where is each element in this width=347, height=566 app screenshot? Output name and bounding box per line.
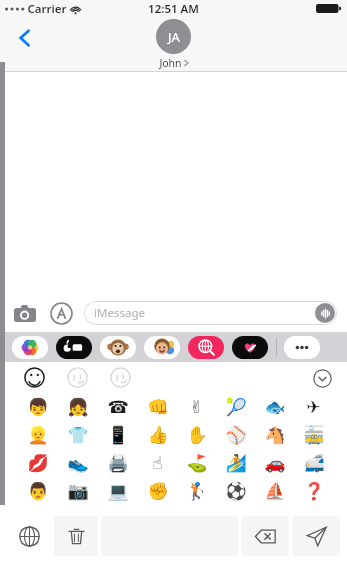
button[interactable]: ✌️	[177, 393, 216, 421]
button[interactable]: Switch keyboard	[7, 516, 51, 556]
button[interactable]: JA	[156, 19, 191, 70]
button[interactable]: 🎾	[216, 393, 255, 421]
button[interactable]: App	[188, 336, 224, 359]
button[interactable]: Back	[8, 21, 42, 55]
staticText: 📷	[67, 481, 89, 501]
button[interactable]: ☎️	[98, 393, 138, 421]
button[interactable]: ⛵	[255, 477, 294, 505]
staticText: ✋	[186, 425, 208, 445]
staticText: ☎️	[107, 397, 129, 417]
staticText: ✊	[147, 481, 169, 501]
button[interactable]: 🐴	[255, 421, 294, 449]
button[interactable]: App	[56, 336, 92, 359]
staticText: 📱	[107, 425, 129, 445]
staticText: 🏄	[225, 453, 247, 473]
button[interactable]: Delete sticker	[54, 516, 98, 556]
button[interactable]: 🏄	[216, 449, 255, 477]
button[interactable]: App	[232, 336, 268, 359]
staticText: ✌️	[189, 397, 204, 417]
button[interactable]: Send	[292, 516, 340, 556]
button[interactable]: 🚅	[294, 449, 333, 477]
button[interactable]: 👟	[58, 449, 98, 477]
staticText: ❓	[303, 481, 325, 501]
button[interactable]: App	[144, 336, 180, 359]
staticText: 12:51 AM	[148, 1, 199, 17]
staticText: 👟	[67, 453, 89, 473]
button[interactable]: 👨	[18, 477, 58, 505]
button[interactable]: 💋	[18, 449, 58, 477]
button[interactable]: 👧	[58, 393, 98, 421]
staticText: 👕	[67, 425, 89, 445]
staticText: 💻	[107, 481, 129, 501]
staticText: 🚋	[303, 425, 325, 445]
button[interactable]: 🖨	[98, 449, 138, 477]
staticText: 👊	[147, 397, 169, 417]
staticText: 👍	[147, 425, 169, 445]
button[interactable]: iMessage	[84, 301, 337, 325]
button[interactable]: Emoji category	[24, 367, 45, 388]
button[interactable]: 👱	[18, 421, 58, 449]
staticText: 🎾	[225, 397, 247, 417]
button[interactable]: 📱	[98, 421, 138, 449]
button[interactable]: ⛳	[177, 449, 216, 477]
button[interactable]: 💻	[98, 477, 138, 505]
staticText: 👱	[27, 425, 49, 445]
button[interactable]: Apps	[46, 298, 76, 328]
staticText: Carrier	[27, 1, 67, 17]
button[interactable]: ⚾	[216, 421, 255, 449]
button[interactable]: 🐟	[255, 393, 294, 421]
button[interactable]: App	[100, 336, 136, 359]
button[interactable]: Collapse keyboard	[311, 367, 333, 389]
staticText: 💋	[27, 453, 49, 473]
button[interactable]: Backspace	[241, 516, 289, 556]
staticText: JA	[168, 28, 180, 46]
staticText: 👨	[27, 481, 49, 501]
button[interactable]: 🚋	[294, 421, 333, 449]
button[interactable]: Emoji category	[67, 367, 88, 388]
button[interactable]: ✋	[177, 421, 216, 449]
button[interactable]: 👍	[138, 421, 177, 449]
button[interactable]: 👦	[18, 393, 58, 421]
staticText: 🖨	[107, 453, 129, 473]
button[interactable]: ⚽	[216, 477, 255, 505]
button[interactable]: ☝️	[138, 449, 177, 477]
staticText: 👧	[67, 397, 89, 417]
staticText: 🏌	[186, 481, 208, 501]
staticText: 🐟	[264, 397, 286, 417]
button[interactable]: 👕	[58, 421, 98, 449]
staticText: ⛵	[264, 481, 286, 501]
staticText: John	[159, 56, 182, 70]
button[interactable]: Camera	[10, 298, 40, 328]
button[interactable]: 📷	[58, 477, 98, 505]
button[interactable]: 🏌	[177, 477, 216, 505]
staticText: 🚅	[303, 453, 325, 473]
button[interactable]: ❓	[294, 477, 333, 505]
staticText: ⚽	[225, 481, 247, 501]
staticText: 🚗	[264, 453, 286, 473]
button[interactable]: App	[284, 336, 320, 359]
button[interactable]: ✊	[138, 477, 177, 505]
staticText: ☝️	[152, 453, 163, 473]
staticText: ✈️	[306, 397, 321, 417]
button[interactable]: 🚗	[255, 449, 294, 477]
staticText: ⛳	[186, 453, 208, 473]
button[interactable]: App	[12, 336, 48, 359]
staticText: iMessage	[94, 305, 145, 321]
staticText: 🐴	[264, 425, 286, 445]
button[interactable]: 👊	[138, 393, 177, 421]
staticText: 👦	[27, 397, 49, 417]
button[interactable]: Emoji category	[110, 367, 131, 388]
staticText: ⚾	[225, 425, 247, 445]
button[interactable]: ✈️	[294, 393, 333, 421]
